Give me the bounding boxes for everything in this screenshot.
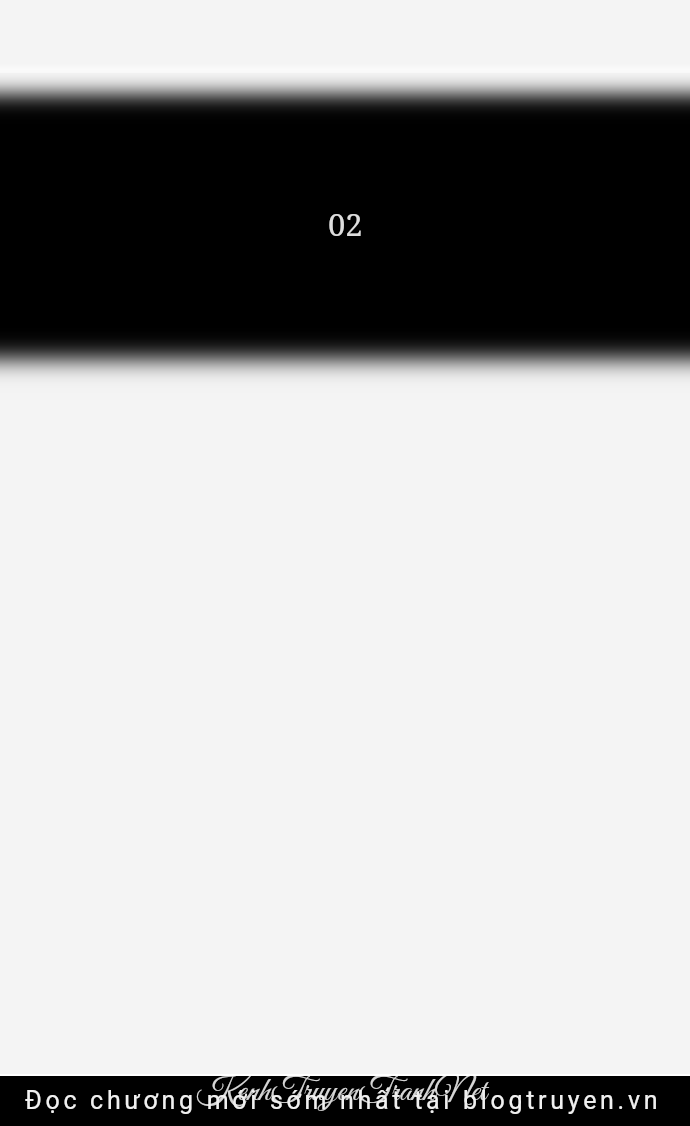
button[interactable]: Read the newest chapters on blogtruyen.v… <box>0 1076 690 1126</box>
staticText: Đọc chương mới sớm nhất tại blogtruyen.v… <box>25 1086 662 1115</box>
button[interactable]: Comic page 02 <box>0 0 690 1126</box>
staticText: KenhTruyenTranhNet <box>196 1076 487 1114</box>
staticText: 02 <box>328 203 363 245</box>
